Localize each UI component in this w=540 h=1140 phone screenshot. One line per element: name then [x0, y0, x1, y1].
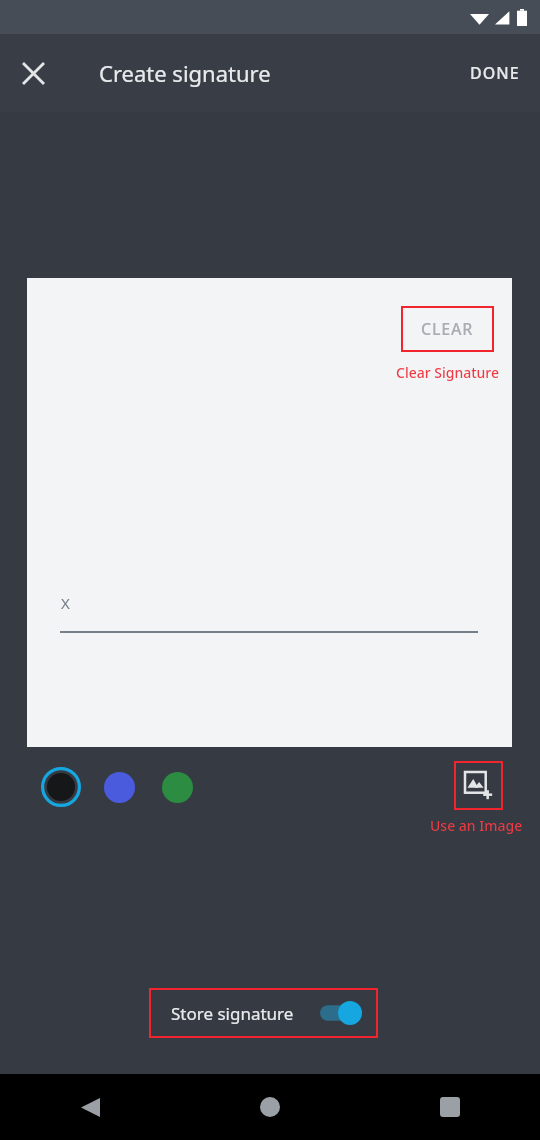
staticText: Use an Image: [430, 816, 523, 835]
button[interactable]: Use an Image: [454, 761, 503, 810]
button[interactable]: CLEAR: [401, 306, 494, 352]
button[interactable]: Recents: [426, 1083, 474, 1131]
button[interactable]: DONE: [450, 46, 540, 100]
staticText: DONE: [470, 62, 520, 84]
button[interactable]: Back: [66, 1083, 114, 1131]
button[interactable]: Close: [9, 49, 57, 97]
staticText: CLEAR: [421, 318, 474, 340]
staticText: Create signature: [99, 58, 271, 88]
staticText: X: [61, 593, 70, 613]
button[interactable]: Green colour: [162, 772, 193, 803]
staticText: Store signature: [171, 1002, 294, 1025]
staticText: Clear Signature: [396, 363, 500, 382]
button[interactable]: Black colour: [41, 767, 81, 807]
button[interactable]: Store signature: [149, 988, 378, 1038]
button[interactable]: Home: [246, 1083, 294, 1131]
button[interactable]: Blue colour: [104, 772, 135, 803]
